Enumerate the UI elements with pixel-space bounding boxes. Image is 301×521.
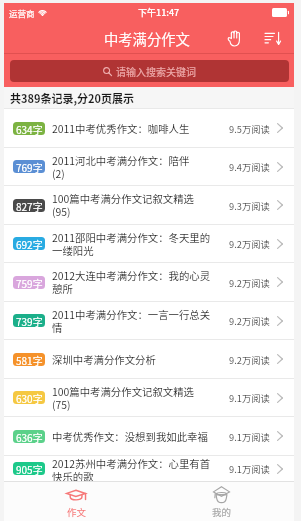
staticText: 9.1万阅读 — [229, 462, 270, 475]
staticText: 692字 — [16, 237, 43, 250]
staticText: 9.1万阅读 — [229, 391, 270, 404]
staticText: 2011河北中考满分作文：陪伴 (2) — [52, 153, 190, 181]
staticText: 请输入搜索关键词 — [116, 64, 196, 78]
button[interactable]: 634字 — [4, 109, 294, 148]
button[interactable]: 827字 — [4, 186, 294, 225]
staticText: 759字 — [16, 276, 43, 289]
staticText: 9.3万阅读 — [229, 199, 270, 212]
staticText: 9.2万阅读 — [229, 276, 270, 289]
staticText: 运营商 — [9, 7, 35, 19]
button[interactable]: 581字 — [4, 340, 294, 379]
button[interactable]: 769字 — [4, 148, 294, 186]
staticText: 9.4万阅读 — [229, 160, 270, 173]
button[interactable]: 请输入搜索关键词 — [10, 60, 289, 82]
staticText: 739字 — [16, 314, 43, 327]
staticText: 作文 — [67, 505, 87, 519]
button[interactable]: 636字 — [4, 417, 294, 456]
staticText: 2012大连中考满分作文：我的心灵 憩所 — [52, 268, 211, 296]
button[interactable]: 739字 — [4, 302, 294, 340]
staticText: 2011中考满分作文：一言一行总关 情 — [52, 307, 211, 335]
staticText: 630字 — [16, 391, 43, 404]
button[interactable]: 630字 — [4, 379, 294, 417]
staticText: 深圳中考满分作文分析 — [52, 352, 156, 367]
staticText: 100篇中考满分作文记叙文精选 (75) — [52, 384, 194, 412]
staticText: 634字 — [16, 122, 43, 135]
button[interactable]: 692字 — [4, 225, 294, 263]
staticText: 9.2万阅读 — [229, 353, 270, 366]
staticText: 905字 — [16, 462, 43, 475]
button[interactable]: 作文 — [4, 482, 149, 521]
button[interactable]: Sort — [258, 22, 289, 54]
staticText: 中考优秀作文：没想到我如此幸福 — [52, 429, 208, 444]
staticText: 2012苏州中考满分作文：心里有首 快乐的歌 — [52, 456, 211, 481]
staticText: 2011邵阳中考满分作文：冬天里的 一缕阳光 — [52, 230, 211, 258]
staticText: 827字 — [16, 199, 43, 212]
button[interactable]: 759字 — [4, 263, 294, 302]
staticText: 中考满分作文 — [104, 28, 190, 49]
staticText: 9.2万阅读 — [229, 237, 270, 250]
staticText: 9.1万阅读 — [229, 430, 270, 443]
staticText: 769字 — [16, 160, 43, 173]
staticText: 100篇中考满分作文记叙文精选 (95) — [52, 191, 194, 219]
staticText: 下午11:47 — [138, 6, 180, 19]
button[interactable]: 905字 — [4, 456, 294, 481]
staticText: 2011中考优秀作文：咖啡人生 — [52, 121, 190, 136]
staticText: 9.5万阅读 — [229, 122, 270, 135]
button[interactable]: 我的 — [149, 482, 294, 521]
staticText: 我的 — [212, 505, 232, 519]
staticText: 636字 — [16, 430, 43, 443]
button[interactable]: Hand tool — [209, 22, 258, 54]
staticText: 9.2万阅读 — [229, 314, 270, 327]
staticText: 581字 — [16, 353, 43, 366]
staticText: 共389条记录,分20页展示 — [10, 90, 135, 106]
